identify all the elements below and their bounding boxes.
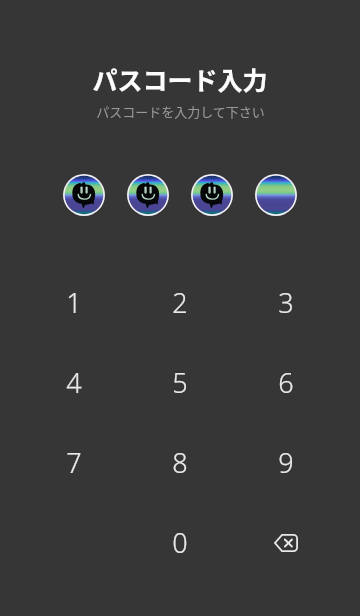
button[interactable]: 2: [127, 262, 233, 342]
staticText: 1: [66, 284, 82, 321]
button[interactable]: 4: [21, 342, 127, 422]
button[interactable]: 9: [233, 422, 339, 502]
button[interactable]: 6: [233, 342, 339, 422]
button[interactable]: 1: [21, 262, 127, 342]
button[interactable]: 8: [127, 422, 233, 502]
button[interactable]: 7: [21, 422, 127, 502]
button[interactable]: 0: [127, 502, 233, 582]
staticText: 6: [278, 364, 294, 401]
button[interactable]: 3: [233, 262, 339, 342]
staticText: 8: [172, 444, 188, 481]
staticText: パスコード入力: [92, 61, 268, 97]
staticText: 5: [172, 364, 188, 401]
staticText: 4: [66, 364, 82, 401]
staticText: 0: [172, 524, 188, 561]
staticText: 9: [278, 444, 294, 481]
staticText: 2: [172, 284, 188, 321]
staticText: 7: [66, 444, 82, 481]
button[interactable]: 5: [127, 342, 233, 422]
button[interactable]: Backspace: [233, 502, 339, 582]
staticText: パスコードを入力して下さい: [96, 102, 265, 121]
staticText: 3: [278, 284, 294, 321]
